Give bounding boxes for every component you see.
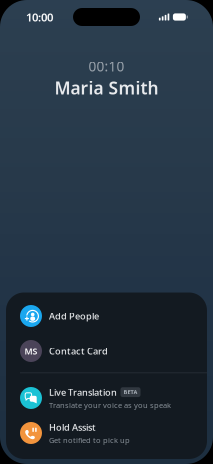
staticText: Maria Smith [54, 76, 158, 100]
staticText: Live Translation [49, 386, 117, 398]
staticText: BETA [123, 388, 137, 396]
staticText: Translate your voice as you speak [49, 400, 171, 410]
button[interactable]: Live Translation [6, 380, 207, 415]
staticText: 00:10 [88, 57, 124, 75]
button[interactable]: Add People [6, 298, 207, 333]
staticText: Contact Card [49, 345, 108, 357]
staticText: Hold Assist [49, 421, 96, 433]
staticText: Get notified to pick up [49, 435, 130, 445]
button[interactable]: Hold Assist [6, 415, 207, 450]
staticText: Add People [49, 310, 99, 322]
button[interactable]: MS [6, 333, 207, 368]
staticText: 10:00 [26, 9, 53, 25]
staticText: MS [24, 345, 37, 357]
